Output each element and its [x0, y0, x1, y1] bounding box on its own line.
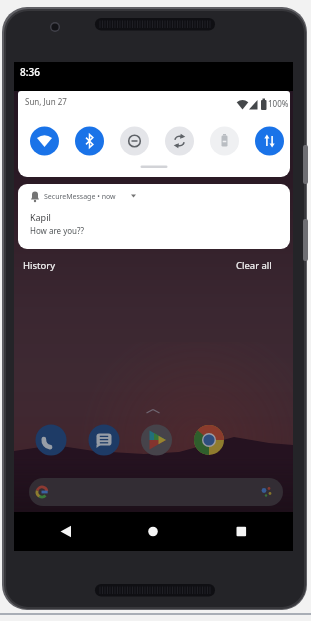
button[interactable]: [120, 127, 149, 156]
staticText: Kapil: [30, 211, 51, 223]
button[interactable]: [29, 478, 283, 506]
button[interactable]: [255, 127, 284, 156]
button[interactable]: [50, 516, 82, 548]
button[interactable]: [193, 424, 225, 456]
button[interactable]: History: [18, 256, 88, 276]
button[interactable]: [88, 424, 120, 456]
staticText: Sun, Jun 27: [25, 96, 67, 107]
button[interactable]: [75, 127, 104, 156]
button[interactable]: [30, 127, 59, 156]
button[interactable]: Clear all: [219, 256, 289, 276]
button[interactable]: SecureMessage • now: [18, 184, 290, 249]
staticText: 8:36: [20, 65, 40, 79]
staticText: How are you??: [30, 225, 85, 236]
staticText: History: [23, 259, 55, 272]
button[interactable]: [137, 516, 169, 548]
staticText: Clear all: [236, 259, 272, 272]
button[interactable]: [225, 516, 257, 548]
button[interactable]: [35, 424, 67, 456]
button[interactable]: [210, 127, 239, 156]
button[interactable]: [165, 127, 194, 156]
staticText: 100%: [268, 98, 289, 109]
button[interactable]: [140, 424, 172, 456]
staticText: SecureMessage • now: [44, 192, 116, 202]
